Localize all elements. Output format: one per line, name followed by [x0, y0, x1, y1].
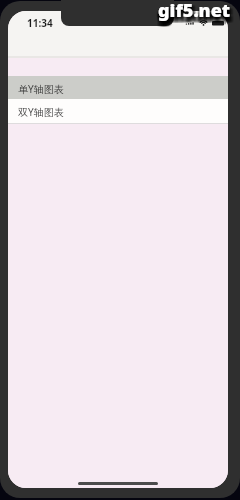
button[interactable]: 双Y轴图表: [8, 99, 228, 123]
staticText: gif5.net: [158, 0, 231, 25]
other: Status icons: [176, 19, 228, 29]
staticText: gif5.net: [160, 2, 233, 27]
staticText: gif5.net: [161, 4, 234, 29]
staticText: gif5.net: [159, 2, 232, 27]
staticText: gif5.net: [157, 0, 230, 24]
staticText: gif5.net: [157, 3, 230, 28]
staticText: gif5.net: [162, 2, 235, 27]
staticText: gif5.net: [159, 4, 232, 29]
staticText: gif5.net: [162, 4, 235, 29]
staticText: gif5.net: [159, 0, 232, 25]
staticText: gif5.net: [158, 1, 231, 26]
staticText: gif5.net: [156, 1, 229, 26]
staticText: gif5.net: [158, 4, 231, 29]
staticText: gif5.net: [156, 0, 229, 24]
staticText: gif5.net: [161, 3, 234, 28]
staticText: 单Y轴图表: [18, 82, 64, 96]
staticText: gif5.net: [159, 1, 232, 26]
staticText: gif5.net: [156, 4, 229, 29]
staticText: 11:34: [27, 16, 53, 30]
staticText: gif5.net: [159, 0, 232, 24]
staticText: gif5.net: [160, 4, 233, 29]
staticText: gif5.net: [160, 1, 233, 26]
staticText: gif5.net: [160, 0, 233, 24]
staticText: gif5.net: [161, 0, 234, 24]
staticText: gif5.net: [158, 0, 231, 23]
staticText: gif5.net: [158, 3, 231, 28]
staticText: gif5.net: [157, 1, 230, 26]
staticText: gif5.net: [161, 2, 234, 27]
staticText: gif5.net: [160, 3, 233, 28]
staticText: gif5.net: [161, 0, 234, 25]
staticText: gif5.net: [159, 3, 232, 28]
staticText: gif5.net: [156, 0, 229, 25]
staticText: gif5.net: [160, 0, 233, 25]
staticText: gif5.net: [162, 1, 235, 26]
staticText: gif5.net: [162, 3, 235, 28]
staticText: gif5.net: [158, 0, 231, 24]
button[interactable]: 单Y轴图表: [8, 76, 228, 99]
staticText: gif5.net: [161, 1, 234, 26]
staticText: gif5.net: [157, 2, 230, 27]
staticText: gif5.net: [162, 0, 235, 24]
staticText: 双Y轴图表: [18, 105, 64, 119]
staticText: gif5.net: [156, 3, 229, 28]
staticText: gif5.net: [158, 2, 231, 27]
staticText: gif5.net: [157, 4, 230, 29]
staticText: gif5.net: [157, 0, 230, 25]
staticText: gif5.net: [156, 2, 229, 27]
staticText: gif5.net: [162, 0, 235, 25]
